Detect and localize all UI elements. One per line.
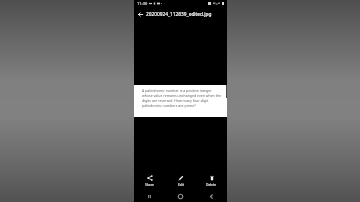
staticText: 11:30 — [137, 1, 148, 6]
staticText: Share — [145, 182, 154, 186]
button[interactable]: Edit — [165, 172, 196, 188]
button[interactable]: Back — [136, 10, 145, 19]
button[interactable]: Home — [165, 190, 196, 202]
staticText: 20200924_112839_edited.jpg — [146, 11, 212, 18]
staticText: Edit — [178, 182, 184, 186]
staticText: A palindromic number is a positive integ… — [142, 88, 222, 108]
button[interactable]: Delete — [196, 172, 227, 188]
button[interactable]: Back — [196, 190, 227, 202]
button[interactable]: Share — [134, 172, 165, 188]
button[interactable]: Recents — [134, 190, 165, 202]
button[interactable]: A palindromic number is a positive integ… — [134, 85, 227, 117]
staticText: Delete — [206, 182, 217, 186]
